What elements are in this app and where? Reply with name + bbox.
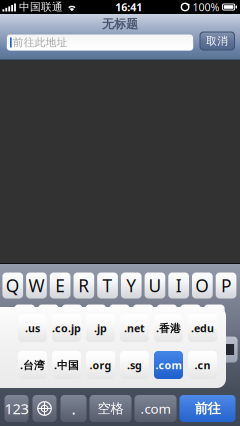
- button[interactable]: S: [38, 304, 59, 330]
- staticText: B: [138, 338, 149, 361]
- button[interactable]: .net: [120, 314, 149, 342]
- button[interactable]: D: [62, 304, 82, 330]
- staticText: X: [67, 338, 77, 361]
- button[interactable]: .: [60, 395, 86, 422]
- button[interactable]: .org: [86, 351, 115, 379]
- button[interactable]: I: [168, 272, 189, 298]
- button[interactable]: .台湾: [18, 351, 47, 379]
- button[interactable]: A: [14, 304, 35, 330]
- button[interactable]: Delete: [214, 336, 238, 362]
- staticText: .org: [89, 358, 111, 372]
- button[interactable]: .cn: [188, 351, 217, 379]
- staticText: M: [182, 338, 198, 361]
- staticText: 16:41: [115, 0, 142, 14]
- button[interactable]: C: [85, 336, 106, 362]
- staticText: 无标题: [102, 16, 138, 31]
- button[interactable]: W: [26, 272, 47, 298]
- staticText: Z: [43, 338, 53, 361]
- button[interactable]: .edu: [188, 314, 217, 342]
- staticText: W: [28, 274, 44, 297]
- staticText: .jp: [94, 321, 107, 335]
- button[interactable]: .co.jp: [52, 314, 81, 342]
- button[interactable]: L: [204, 304, 225, 330]
- button[interactable]: .com: [154, 351, 183, 379]
- button[interactable]: Q: [2, 272, 23, 298]
- button[interactable]: Y: [121, 272, 142, 298]
- staticText: C: [90, 338, 101, 361]
- staticText: P: [221, 274, 231, 297]
- button[interactable]: F: [85, 304, 106, 330]
- staticText: O: [195, 274, 209, 297]
- staticText: .com: [140, 399, 170, 418]
- button[interactable]: B: [133, 336, 153, 362]
- button[interactable]: .sg: [120, 351, 149, 379]
- button[interactable]: M: [180, 336, 201, 362]
- staticText: U: [148, 274, 161, 297]
- button[interactable]: P: [216, 272, 236, 298]
- button[interactable]: V: [109, 336, 130, 362]
- button[interactable]: U: [145, 272, 165, 298]
- staticText: 中国联通: [19, 0, 63, 14]
- button[interactable]: .香港: [154, 314, 183, 342]
- staticText: .us: [25, 321, 40, 335]
- staticText: .台湾: [20, 358, 45, 372]
- button[interactable]: .us: [18, 314, 47, 342]
- button[interactable]: R: [73, 272, 94, 298]
- button[interactable]: .jp: [86, 314, 115, 342]
- staticText: .sg: [127, 358, 142, 372]
- staticText: 取消: [206, 34, 228, 48]
- staticText: .cn: [194, 358, 210, 372]
- staticText: N: [160, 338, 173, 361]
- staticText: 100%: [193, 0, 220, 14]
- staticText: .net: [124, 321, 145, 335]
- staticText: K: [185, 306, 196, 329]
- button[interactable]: 前往: [179, 395, 235, 422]
- button[interactable]: Z: [38, 336, 59, 362]
- button[interactable]: Switch keyboard: [32, 395, 56, 422]
- button[interactable]: H: [133, 304, 153, 330]
- staticText: 空格: [97, 400, 123, 417]
- button[interactable]: Shift: [2, 336, 34, 362]
- button[interactable]: .中国: [52, 351, 81, 379]
- staticText: F: [91, 306, 100, 329]
- button[interactable]: 空格: [89, 395, 131, 422]
- button[interactable]: 取消: [199, 31, 235, 50]
- button[interactable]: K: [180, 304, 201, 330]
- staticText: L: [210, 306, 219, 329]
- staticText: 123: [4, 398, 28, 418]
- button[interactable]: 123: [4, 395, 28, 422]
- button[interactable]: T: [97, 272, 118, 298]
- button[interactable]: O: [192, 272, 213, 298]
- staticText: 前往: [194, 400, 220, 417]
- button[interactable]: N: [156, 336, 177, 362]
- button[interactable]: 前往此地址: [6, 32, 194, 51]
- staticText: V: [114, 338, 124, 361]
- staticText: .com: [155, 358, 181, 372]
- staticText: R: [78, 274, 89, 297]
- staticText: Q: [6, 274, 20, 297]
- button[interactable]: G: [109, 304, 130, 330]
- button[interactable]: X: [62, 336, 82, 362]
- staticText: D: [65, 306, 78, 329]
- staticText: T: [102, 274, 112, 297]
- staticText: .edu: [191, 321, 214, 335]
- button[interactable]: .com: [134, 395, 176, 422]
- staticText: A: [19, 306, 30, 329]
- staticText: I: [176, 274, 182, 297]
- staticText: H: [137, 306, 150, 329]
- button[interactable]: E: [50, 272, 70, 298]
- staticText: .中国: [54, 358, 79, 372]
- staticText: Y: [126, 274, 136, 297]
- button[interactable]: J: [156, 304, 177, 330]
- staticText: 前往此地址: [13, 36, 68, 49]
- staticText: J: [164, 306, 169, 329]
- staticText: .香港: [156, 321, 181, 335]
- staticText: .: [71, 398, 75, 419]
- staticText: .co.jp: [52, 321, 81, 335]
- staticText: E: [55, 274, 65, 297]
